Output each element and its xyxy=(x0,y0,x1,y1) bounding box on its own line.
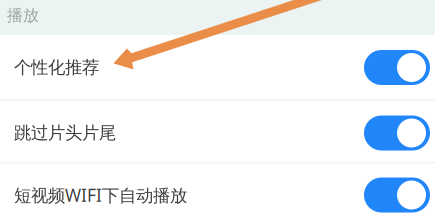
button[interactable]: 短视频WIFI下自动播放 xyxy=(0,164,435,214)
button[interactable]: 个性化推荐 xyxy=(0,36,435,99)
staticText: 跳过片头片尾 xyxy=(14,122,116,144)
staticText: 个性化推荐 xyxy=(14,57,99,78)
staticText: 播放 xyxy=(7,6,39,25)
button[interactable]: 跳过片头片尾 xyxy=(0,100,435,165)
staticText: 短视频WIFI下自动播放 xyxy=(14,183,187,206)
